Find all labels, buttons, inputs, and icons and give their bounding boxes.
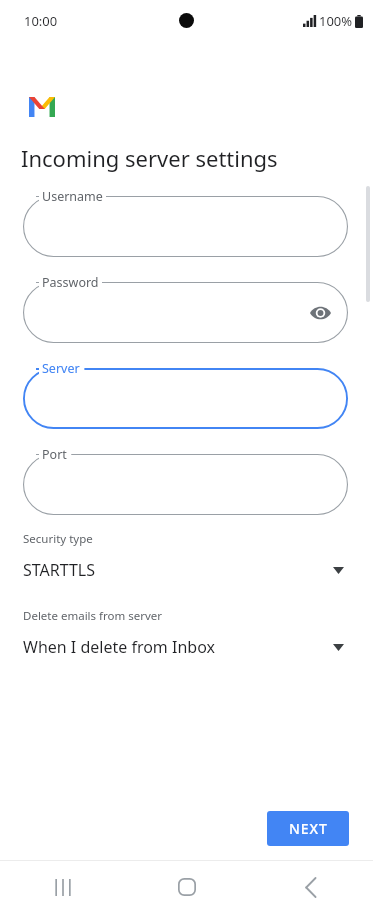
staticText: 100%	[319, 12, 353, 30]
button[interactable]: When I delete from Inbox	[0, 633, 373, 663]
staticText: Incoming server settings	[21, 143, 278, 173]
staticText: STARTTLS	[23, 559, 96, 581]
staticText: Server	[42, 360, 80, 377]
staticText: Username	[42, 188, 103, 205]
staticText: NEXT	[289, 819, 328, 838]
button[interactable]: Recent apps	[0, 860, 125, 914]
button[interactable]: Password	[23, 282, 348, 343]
button[interactable]: Username	[23, 196, 348, 257]
staticText: When I delete from Inbox	[23, 636, 215, 658]
button[interactable]: Server	[23, 368, 348, 429]
staticText: Password	[42, 274, 99, 291]
button[interactable]: Back	[249, 860, 373, 914]
button[interactable]: Home	[125, 860, 249, 914]
staticText: 10:00	[24, 12, 58, 30]
button[interactable]: Port	[23, 454, 348, 515]
button[interactable]: Show password	[304, 297, 336, 329]
staticText: Port	[42, 446, 67, 463]
button[interactable]: NEXT	[267, 811, 349, 846]
button[interactable]: STARTTLS	[0, 556, 373, 586]
staticText: Security type	[23, 531, 93, 547]
staticText: Delete emails from server	[23, 608, 163, 624]
